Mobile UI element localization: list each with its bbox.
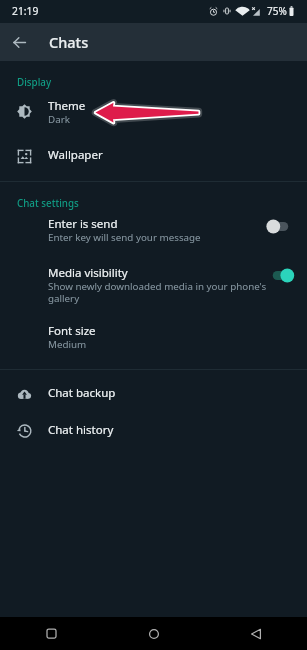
button[interactable]: Wallpaper xyxy=(0,133,307,175)
staticText: Wallpaper xyxy=(48,147,103,163)
staticText: 21:19 xyxy=(12,4,39,18)
button[interactable]: Home xyxy=(103,617,205,650)
button[interactable]: Media visibility xyxy=(0,255,307,308)
staticText: Chat settings xyxy=(17,197,79,210)
staticText: Show newly downloaded media in your phon… xyxy=(48,280,270,305)
staticText: Enter is send xyxy=(48,216,118,232)
button[interactable]: Recent apps xyxy=(0,617,103,650)
button[interactable]: Chat history xyxy=(0,412,307,450)
staticText: Chat history xyxy=(48,422,114,438)
staticText: Dark xyxy=(48,113,288,126)
staticText: Font size xyxy=(48,323,96,339)
button[interactable]: Font size xyxy=(0,314,307,356)
staticText: Media visibility xyxy=(48,265,128,281)
button[interactable]: Enter is send xyxy=(0,210,307,250)
button[interactable]: Back xyxy=(3,26,35,58)
button[interactable]: Theme xyxy=(0,93,307,133)
staticText: Display xyxy=(17,76,52,89)
staticText: 75% xyxy=(267,4,287,18)
staticText: Chat backup xyxy=(48,385,116,401)
staticText: Chats xyxy=(49,32,89,52)
staticText: Enter key will send your message xyxy=(48,231,288,244)
staticText: Medium xyxy=(48,338,288,351)
button[interactable]: Chat backup xyxy=(0,373,307,412)
button[interactable]: Back xyxy=(205,617,307,650)
staticText: Theme xyxy=(48,98,86,114)
